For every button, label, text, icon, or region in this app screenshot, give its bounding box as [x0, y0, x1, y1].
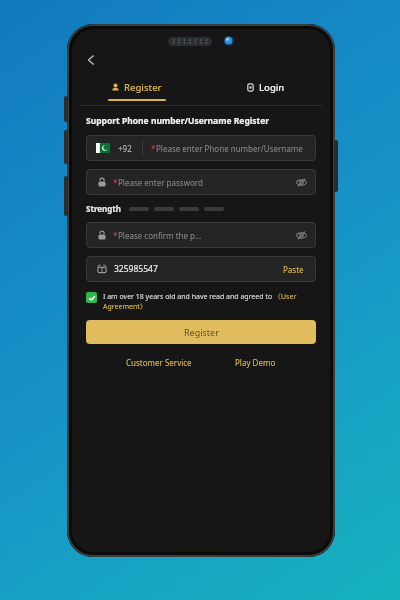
staticText: Customer Service — [126, 357, 192, 368]
staticText: Register — [124, 81, 162, 94]
staticText: Support Phone number/Username Register — [86, 115, 270, 127]
button[interactable]: * — [86, 169, 316, 195]
staticText: Paste — [283, 264, 304, 275]
staticText: Play Demo — [235, 357, 276, 368]
staticText: Strength — [86, 203, 121, 214]
staticText: * — [113, 230, 118, 241]
staticText: Please enter Phone number/Username — [156, 143, 303, 154]
button[interactable]: Login — [201, 77, 330, 105]
staticText: Register — [184, 326, 219, 338]
staticText: Agreement》 — [103, 302, 147, 312]
button[interactable]: Customer Service — [122, 353, 196, 372]
button[interactable]: Play Demo — [231, 353, 280, 372]
staticText: * — [151, 143, 156, 154]
button[interactable]: +92 — [86, 135, 316, 161]
staticText: +92 — [118, 143, 132, 154]
button[interactable]: Show confirm password — [292, 226, 310, 244]
button[interactable]: I am over 18 years old and have read and… — [86, 292, 316, 312]
button[interactable]: Register — [86, 320, 316, 344]
button[interactable]: Back — [78, 47, 104, 73]
button[interactable]: 325985547 — [86, 256, 316, 282]
staticText: Please confirm the password again, it sh… — [118, 230, 205, 241]
staticText: 《User — [274, 292, 297, 302]
staticText: Please enter password — [118, 177, 203, 188]
button[interactable]: Register — [72, 77, 201, 105]
staticText: 325985547 — [114, 263, 158, 275]
staticText: I am over 18 years old and have read and… — [103, 292, 274, 302]
button[interactable]: Paste — [277, 260, 310, 279]
button[interactable]: Show password — [292, 173, 310, 191]
staticText: Login — [259, 81, 285, 94]
staticText: * — [113, 177, 118, 188]
button[interactable]: * — [86, 222, 316, 248]
